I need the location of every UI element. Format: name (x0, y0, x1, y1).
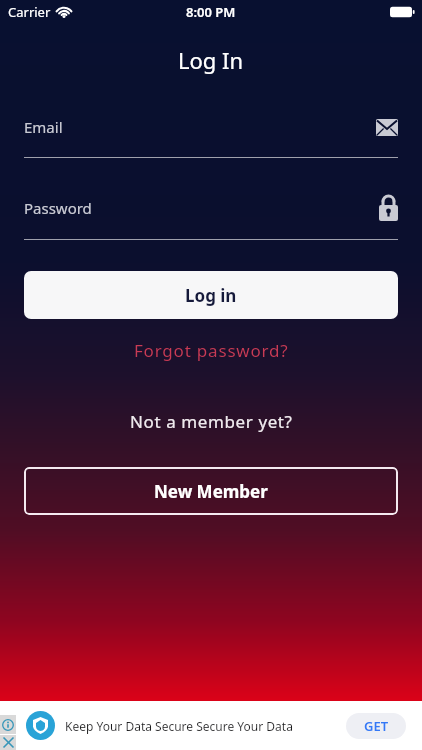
staticText: Not a member yet? (130, 410, 293, 433)
staticText: Email (24, 117, 63, 137)
staticText: 8:00 PM (186, 3, 236, 21)
button[interactable]: Forgot password? (134, 339, 289, 362)
button[interactable] (0, 715, 16, 734)
button[interactable]: GET (346, 713, 406, 739)
staticText: Carrier (8, 3, 51, 21)
staticText: New Member (154, 480, 268, 503)
button[interactable] (0, 735, 16, 750)
staticText: Keep Your Data Secure Secure Your Data (65, 718, 293, 734)
staticText: Password (24, 198, 92, 218)
staticText: Log In (178, 45, 244, 75)
button[interactable]: Log in (24, 271, 398, 319)
staticText: Log in (185, 284, 237, 307)
button[interactable]: New Member (24, 467, 398, 515)
staticText: GET (364, 717, 389, 735)
